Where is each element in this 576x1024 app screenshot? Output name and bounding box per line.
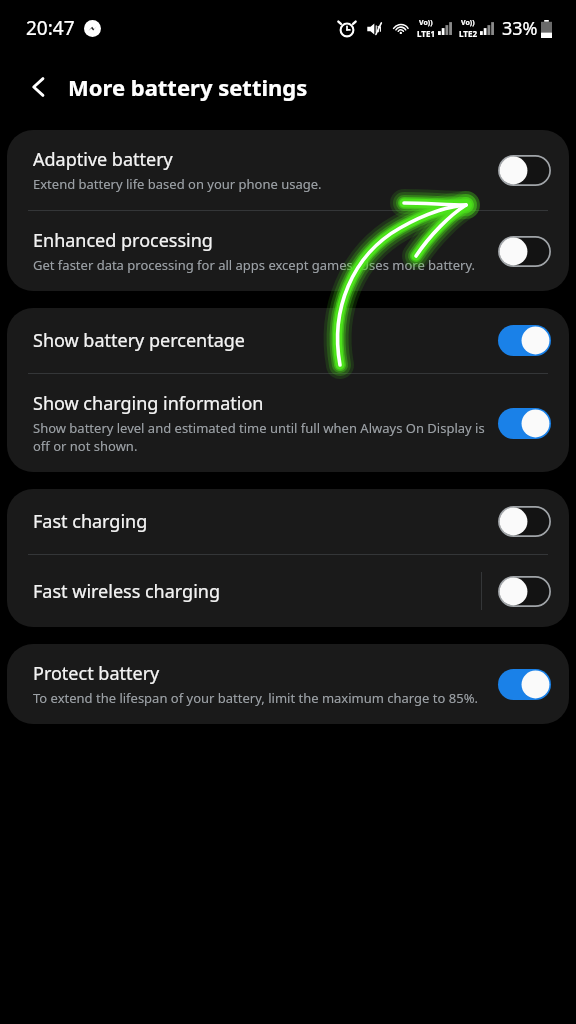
button[interactable]: Fast wireless charging: [7, 555, 569, 627]
staticText: LTE2: [459, 28, 477, 39]
staticText: LTE1: [417, 28, 435, 39]
button[interactable]: Toggle on: [498, 669, 551, 700]
staticText: Show charging information: [33, 391, 264, 416]
staticText: Vo)): [461, 18, 475, 28]
staticText: More battery settings: [68, 72, 308, 102]
staticText: Show battery level and estimated time un…: [33, 419, 486, 455]
button[interactable]: Show charging information: [7, 374, 569, 472]
button[interactable]: Back: [16, 64, 62, 110]
staticText: 20:47: [26, 15, 75, 41]
staticText: Get faster data processing for all apps …: [33, 256, 476, 274]
staticText: Protect battery: [33, 661, 160, 686]
staticText: Fast charging: [33, 509, 148, 534]
button[interactable]: Enhanced processing: [7, 211, 569, 291]
staticText: Adaptive battery: [33, 147, 173, 172]
button[interactable]: Toggle on: [498, 325, 551, 356]
staticText: Vo)): [419, 18, 433, 28]
button[interactable]: Fast charging: [7, 489, 569, 554]
button[interactable]: Show battery percentage: [7, 308, 569, 373]
staticText: To extend the lifespan of your battery, …: [33, 689, 478, 707]
button[interactable]: Toggle off: [498, 155, 551, 186]
button[interactable]: Protect battery: [7, 644, 569, 724]
staticText: Fast wireless charging: [33, 579, 221, 604]
staticText: Show battery percentage: [33, 328, 246, 353]
button[interactable]: Toggle off: [498, 236, 551, 267]
staticText: 33%: [502, 16, 538, 41]
button[interactable]: Toggle on: [498, 408, 551, 439]
button[interactable]: Toggle off: [498, 506, 551, 537]
staticText: Extend battery life based on your phone …: [33, 175, 322, 193]
button[interactable]: Adaptive battery: [7, 130, 569, 210]
staticText: Enhanced processing: [33, 228, 213, 253]
button[interactable]: Toggle off: [498, 576, 551, 607]
